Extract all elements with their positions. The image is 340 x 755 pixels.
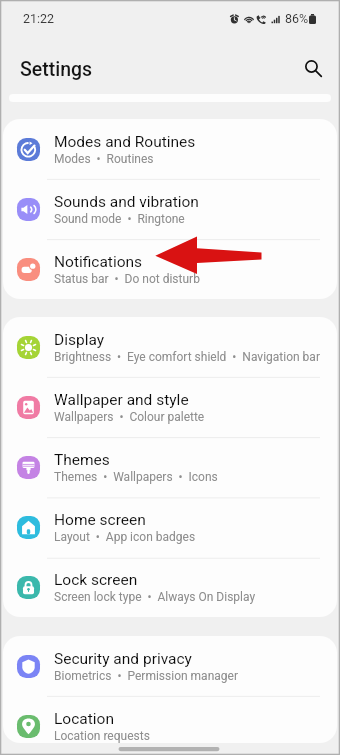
staticText: Sounds and vibration [54,193,199,211]
button[interactable]: Sounds and vibration [3,179,337,239]
button[interactable]: Wallpaper and style [3,377,337,437]
staticText: Status bar • Do not disturb [54,272,200,286]
button[interactable]: Home screen [3,497,337,557]
button[interactable]: Display [3,317,337,377]
staticText: Home screen [54,511,146,529]
button[interactable]: Search [293,48,333,88]
staticText: Modes • Routines [54,152,154,166]
staticText: Modes and Routines [54,133,196,151]
staticText: Themes • Wallpapers • Icons [54,470,218,484]
staticText: Biometrics • Permission manager [54,669,238,683]
staticText: Layout • App icon badges [54,530,196,544]
button[interactable]: Themes [3,437,337,497]
staticText: Themes [54,451,110,469]
staticText: Settings [20,58,93,81]
staticText: Notifications [54,253,143,271]
staticText: Location requests [54,729,150,743]
button[interactable]: Security and privacy [3,636,337,696]
staticText: Security and privacy [54,650,192,668]
staticText: Display [54,331,105,349]
staticText: Wallpapers • Colour palette [54,410,205,424]
button[interactable]: Lock screen [3,557,337,617]
staticText: Brightness • Eye comfort shield • Naviga… [54,350,320,364]
staticText: Location [54,710,114,728]
staticText: Wallpaper and style [54,391,189,409]
staticText: 21:22 [23,11,55,26]
button[interactable]: Notifications [3,239,337,299]
staticText: Lock screen [54,571,138,589]
button[interactable]: Modes and Routines [3,119,337,179]
staticText: Screen lock type • Always On Display [54,590,256,604]
staticText: 86% [285,11,309,26]
button[interactable]: Location [3,696,337,743]
staticText: Sound mode • Ringtone [54,212,185,226]
